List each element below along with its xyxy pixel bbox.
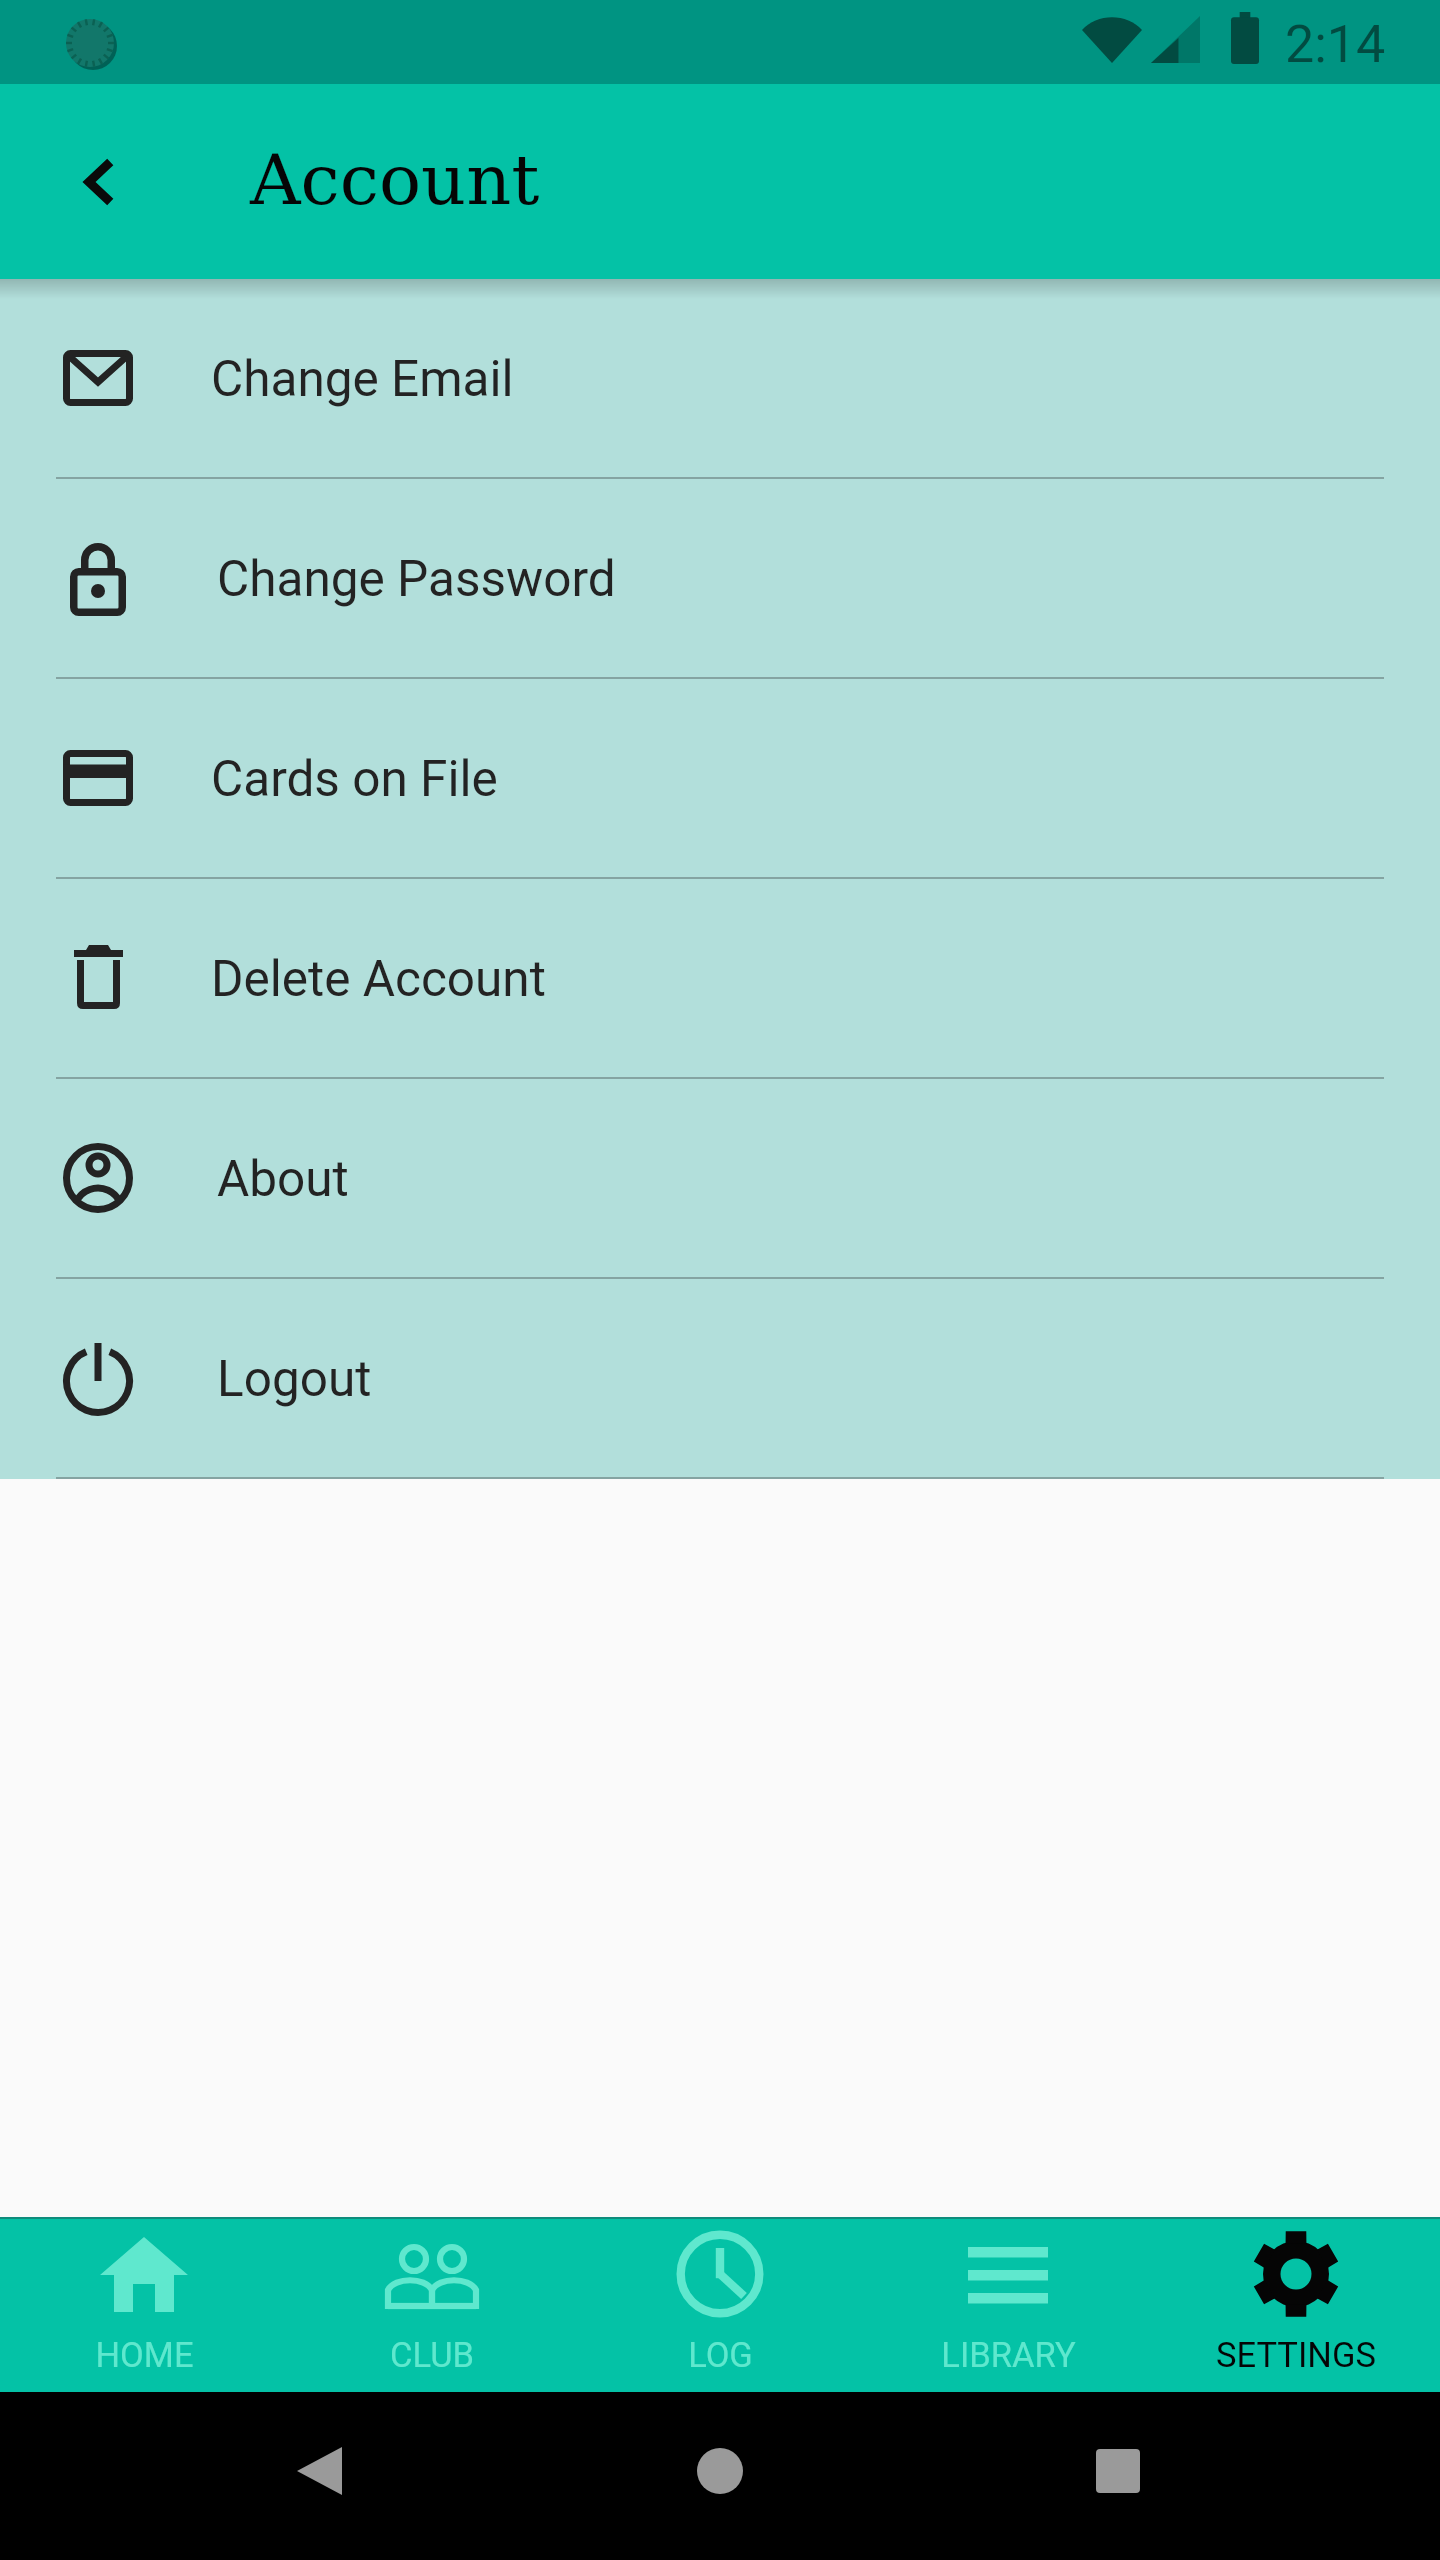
staticText: Delete Account [211, 950, 546, 1008]
button[interactable]: Recent apps [1092, 2445, 1144, 2497]
button[interactable]: SETTINGS [1152, 2219, 1440, 2392]
button[interactable]: Back [42, 126, 154, 238]
button[interactable]: Delete Account [0, 879, 1440, 1077]
staticText: HOME [95, 2335, 194, 2375]
staticText: LOG [688, 2335, 753, 2375]
button[interactable]: LOG [576, 2219, 864, 2392]
button[interactable]: LIBRARY [864, 2219, 1152, 2392]
staticText: Logout [217, 1350, 372, 1408]
button[interactable]: Logout [0, 1279, 1440, 1477]
button[interactable]: About [0, 1079, 1440, 1277]
button[interactable]: Back [296, 2445, 348, 2501]
button[interactable]: Home [694, 2445, 746, 2497]
button[interactable]: HOME [0, 2219, 288, 2392]
staticText: CLUB [390, 2335, 474, 2375]
staticText: SETTINGS [1216, 2335, 1376, 2375]
staticText: Cards on File [211, 750, 498, 808]
staticText: Change Password [217, 550, 616, 608]
staticText: Account [250, 139, 540, 220]
button[interactable]: Cards on File [0, 679, 1440, 877]
button[interactable]: Change Password [0, 479, 1440, 677]
staticText: About [217, 1150, 349, 1208]
staticText: Change Email [211, 350, 514, 408]
button[interactable]: Change Email [0, 279, 1440, 477]
button[interactable]: CLUB [288, 2219, 576, 2392]
staticText: LIBRARY [941, 2335, 1076, 2375]
staticText: 2:14 [1285, 14, 1386, 75]
